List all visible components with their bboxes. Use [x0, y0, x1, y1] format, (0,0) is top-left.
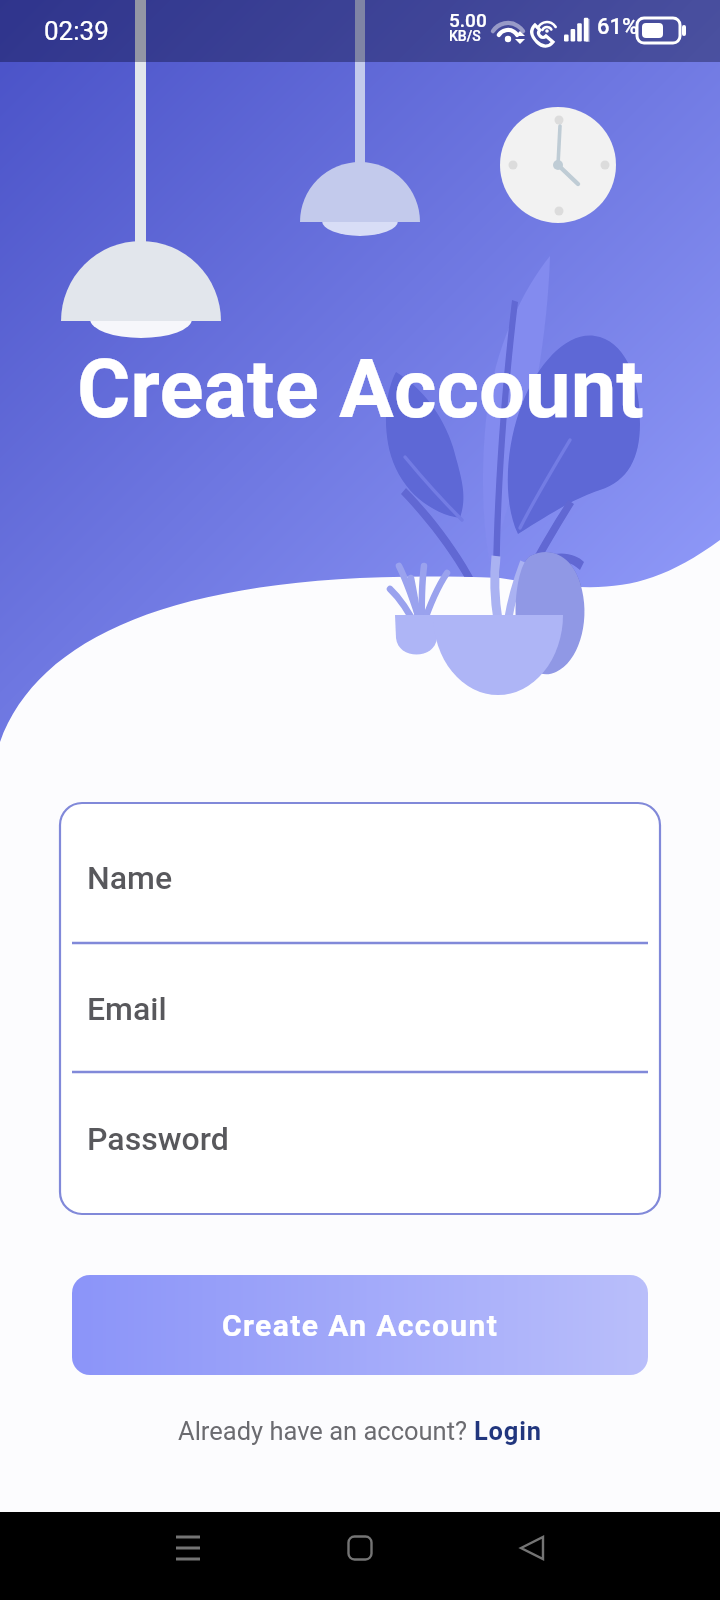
- staticText: KB/S: [449, 28, 481, 44]
- staticText: Already have an account?: [178, 1416, 474, 1446]
- button[interactable]: Back: [496, 1512, 568, 1584]
- staticText: Name: [87, 859, 173, 897]
- staticText: 5.00: [449, 9, 487, 31]
- button[interactable]: Password: [60, 1064, 660, 1213]
- staticText: Password: [87, 1120, 229, 1158]
- staticText: Create An Account: [222, 1308, 499, 1343]
- button[interactable]: Email: [60, 934, 660, 1065]
- button[interactable]: Recents: [152, 1512, 224, 1584]
- staticText: Email: [87, 990, 167, 1028]
- button[interactable]: Name: [60, 803, 660, 934]
- button[interactable]: Login: [474, 1416, 542, 1446]
- button[interactable]: Create An Account: [72, 1275, 648, 1375]
- staticText: Create Account: [77, 341, 644, 437]
- staticText: Login: [474, 1416, 542, 1446]
- staticText: 02:39: [44, 16, 109, 46]
- staticText: 61%: [597, 14, 639, 40]
- button[interactable]: Home: [324, 1512, 396, 1584]
